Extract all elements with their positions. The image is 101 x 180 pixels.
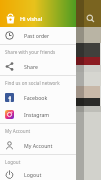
button[interactable]: Logout [0, 168, 76, 180]
staticText: Instagram [24, 111, 50, 118]
button[interactable]: Facebook [0, 89, 76, 106]
staticText: Past order [24, 32, 50, 39]
button[interactable]: Instagram [0, 106, 76, 123]
button[interactable]: Hi vishal [0, 0, 76, 27]
staticText: Share with your friends [5, 49, 56, 55]
button[interactable]: Share [0, 58, 76, 75]
staticText: Facebook [24, 94, 48, 101]
staticText: Find us on social network [5, 80, 60, 86]
staticText: Logout [24, 171, 42, 178]
staticText: My Account [5, 128, 31, 134]
staticText: Share [24, 63, 38, 70]
button[interactable]: Past order [0, 27, 76, 44]
staticText: Hi vishal [20, 15, 43, 22]
button[interactable]: Search [86, 14, 95, 23]
staticText: My Account [24, 142, 53, 149]
button[interactable]: My Account [0, 137, 76, 154]
staticText: Logout [5, 159, 21, 165]
